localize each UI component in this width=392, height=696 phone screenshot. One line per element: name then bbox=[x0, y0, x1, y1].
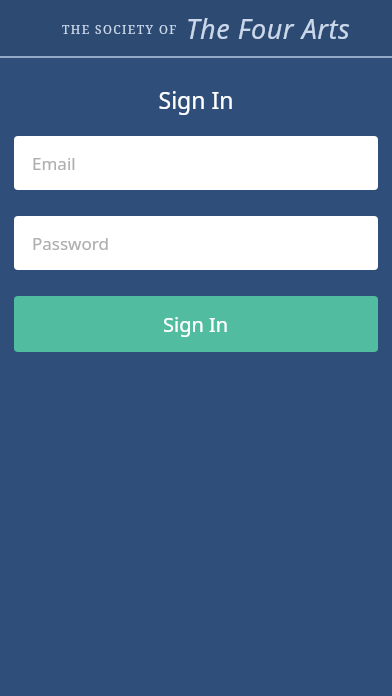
staticText: THE SOCIETY OF bbox=[62, 21, 178, 37]
staticText: Email bbox=[32, 152, 76, 175]
button[interactable]: Password bbox=[14, 216, 378, 270]
staticText: The Four Arts bbox=[186, 10, 351, 47]
staticText: Sign In bbox=[0, 84, 392, 115]
button[interactable]: Email bbox=[14, 136, 378, 190]
staticText: Sign In bbox=[163, 311, 229, 338]
button[interactable]: Sign In bbox=[14, 296, 378, 352]
staticText: Password bbox=[32, 232, 109, 255]
